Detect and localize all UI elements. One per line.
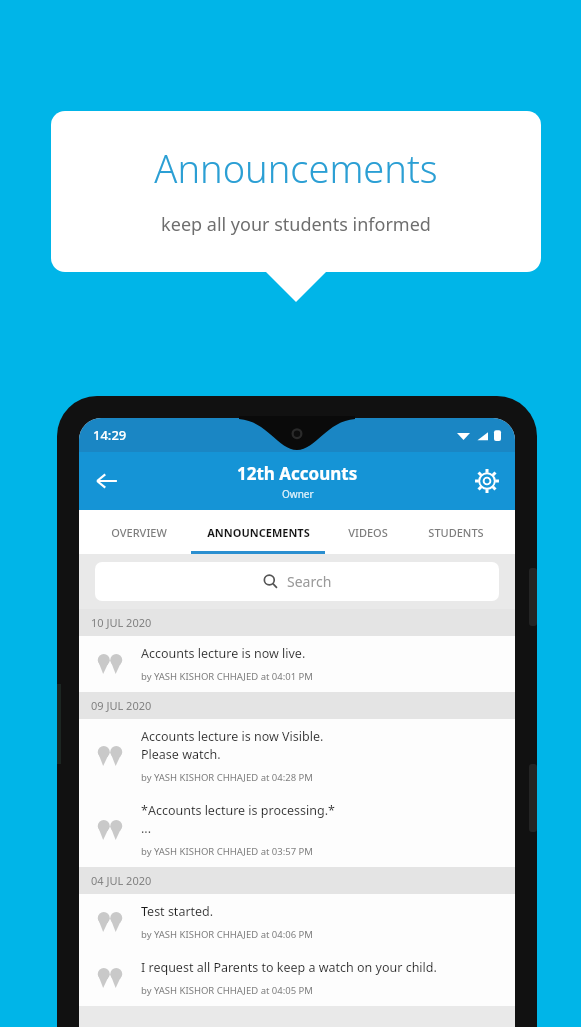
staticText: ANNOUNCEMENTS [207, 525, 310, 540]
staticText: I request all Parents to keep a watch on… [141, 959, 437, 976]
staticText: by YASH KISHOR CHHAJED at 04:06 PM [141, 928, 313, 941]
button[interactable]: Test started. [79, 894, 515, 950]
staticText: 04 JUL 2020 [91, 873, 152, 888]
staticText: Test started. [141, 903, 214, 920]
button[interactable]: VIDEOS [328, 510, 407, 554]
staticText: Accounts lecture is now Visible. [141, 728, 324, 745]
staticText: Owner [282, 487, 314, 501]
staticText: by YASH KISHOR CHHAJED at 04:28 PM [141, 771, 313, 784]
button[interactable]: ANNOUNCEMENTS [188, 510, 328, 554]
staticText: by YASH KISHOR CHHAJED at 04:01 PM [141, 670, 313, 683]
staticText: Announcements [154, 142, 438, 194]
button[interactable]: Search [95, 562, 499, 601]
staticText: STUDENTS [428, 525, 484, 540]
staticText: Please watch. [141, 746, 221, 763]
staticText: 12th Accounts [237, 462, 358, 485]
staticText: Search [287, 572, 332, 591]
button[interactable]: Accounts lecture is now Visible. [79, 719, 515, 793]
staticText: Accounts lecture is now live. [141, 645, 306, 662]
staticText: 09 JUL 2020 [91, 698, 152, 713]
staticText: by YASH KISHOR CHHAJED at 04:05 PM [141, 984, 313, 997]
staticText: VIDEOS [348, 525, 388, 540]
button[interactable]: Settings [467, 461, 507, 501]
staticText: ... [141, 820, 152, 837]
button[interactable]: I request all Parents to keep a watch on… [79, 950, 515, 1006]
staticText: 10 JUL 2020 [91, 615, 152, 630]
staticText: *Accounts lecture is processing.* [141, 802, 335, 819]
staticText: by YASH KISHOR CHHAJED at 03:57 PM [141, 845, 313, 858]
button[interactable]: Accounts lecture is now live. [79, 636, 515, 692]
staticText: keep all your students informed [161, 212, 431, 237]
staticText: 14:29 [93, 426, 127, 444]
button[interactable]: *Accounts lecture is processing.* [79, 793, 515, 867]
button[interactable]: OVERVIEW [89, 510, 188, 554]
button[interactable]: Back [87, 461, 127, 501]
button[interactable]: STUDENTS [407, 510, 505, 554]
staticText: OVERVIEW [111, 525, 167, 540]
